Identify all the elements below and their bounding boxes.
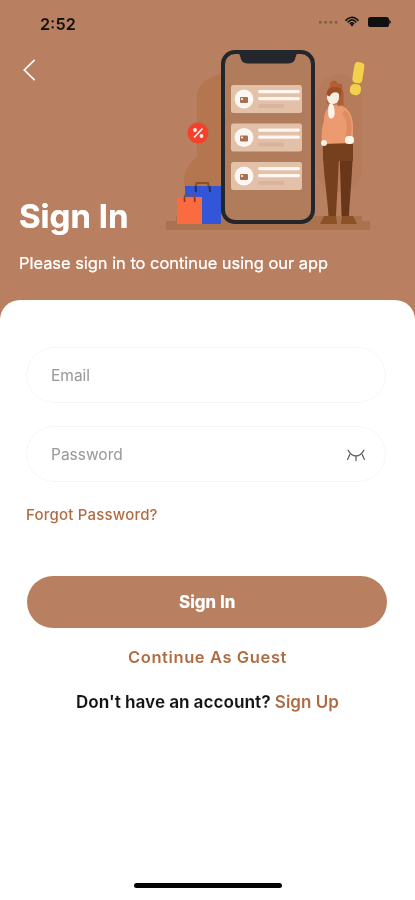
staticText: Sign In: [179, 592, 236, 613]
button[interactable]: Continue As Guest: [124, 643, 291, 671]
staticText: Continue As Guest: [128, 647, 287, 667]
button[interactable]: Don't have an account? Sign Up: [72, 688, 343, 717]
staticText: Sign In: [19, 196, 129, 236]
staticText: 2:52: [40, 14, 76, 33]
button[interactable]: Email: [26, 347, 386, 403]
staticText: Don't have an account? Sign Up: [76, 692, 339, 713]
staticText: Please sign in to continue using our app: [19, 253, 329, 273]
button[interactable]: Show password: [343, 441, 369, 467]
button[interactable]: Back: [10, 50, 50, 90]
button[interactable]: Forgot Password?: [24, 503, 160, 525]
button[interactable]: Sign In: [27, 576, 387, 628]
button[interactable]: Password: [26, 426, 386, 482]
staticText: Password: [51, 445, 123, 464]
staticText: Forgot Password?: [26, 505, 158, 523]
staticText: Email: [51, 366, 91, 385]
